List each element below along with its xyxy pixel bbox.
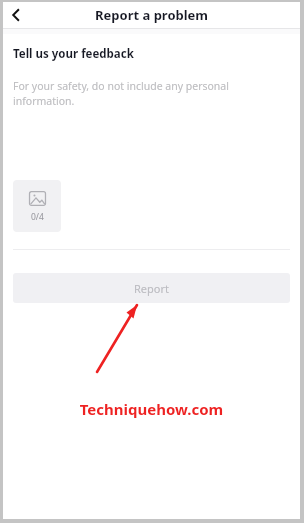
button[interactable]: Add photo: [13, 180, 61, 232]
button[interactable]: Report: [13, 273, 290, 303]
staticText: 0/4: [31, 211, 44, 223]
staticText: Report: [134, 281, 169, 296]
staticText: Techniquehow.com: [3, 399, 300, 419]
staticText: Report a problem: [95, 6, 209, 24]
button[interactable]: Back: [3, 2, 29, 28]
staticText: Tell us your feedback: [13, 46, 134, 62]
staticText: For your safety, do not include any pers…: [13, 79, 229, 108]
